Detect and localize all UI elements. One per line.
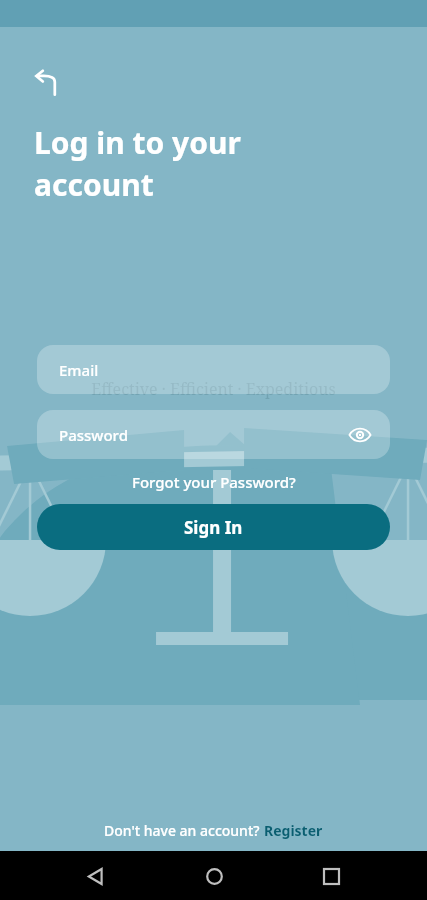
button[interactable]: Home [192, 854, 236, 898]
staticText: Register [264, 821, 323, 840]
staticText: Email [59, 360, 99, 380]
button[interactable]: Back [74, 854, 118, 898]
staticText: Password [59, 425, 128, 445]
button[interactable]: Password [37, 410, 390, 459]
button[interactable]: Email [37, 345, 390, 394]
staticText: Log in to your account [34, 122, 241, 205]
staticText: Don't have an account? [104, 821, 264, 840]
button[interactable]: Recents [309, 854, 353, 898]
button[interactable]: Show password [340, 415, 380, 455]
button[interactable]: Sign In [37, 504, 390, 550]
staticText: Effective · Efficient · Expeditious [0, 378, 427, 400]
staticText: Forgot your Password? [132, 472, 296, 492]
button[interactable]: Don't have an account? [0, 821, 427, 900]
button[interactable]: Forgot your Password? [124, 469, 304, 495]
staticText: Sign In [184, 516, 243, 539]
button[interactable]: Back [24, 60, 70, 106]
